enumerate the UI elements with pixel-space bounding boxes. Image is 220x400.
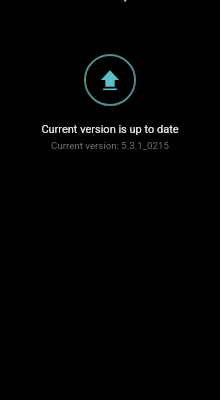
staticText: Current version is up to date bbox=[41, 123, 179, 136]
button[interactable]: Check for updates bbox=[84, 54, 136, 106]
staticText: Current version: 5.3.1_0215 bbox=[51, 140, 169, 151]
